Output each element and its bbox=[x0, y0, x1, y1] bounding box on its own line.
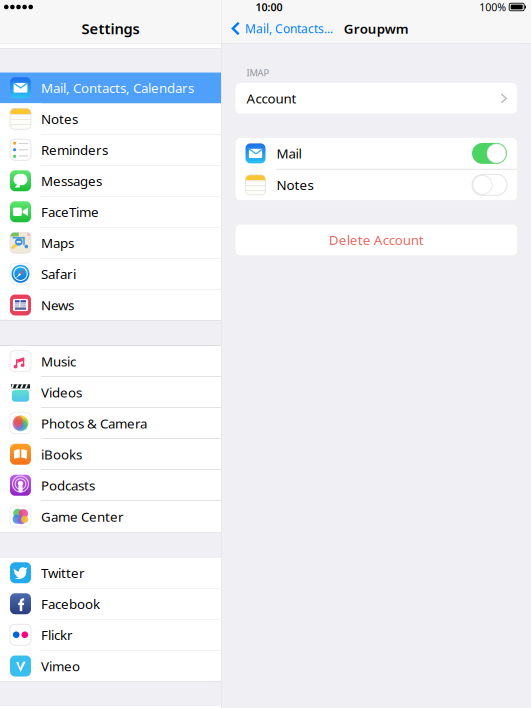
button[interactable]: Twitter bbox=[0, 557, 221, 588]
staticText: News bbox=[41, 296, 74, 314]
button[interactable]: Flickr bbox=[0, 619, 221, 650]
button[interactable]: iBooks bbox=[0, 439, 221, 470]
staticText: Facebook bbox=[41, 595, 100, 613]
button[interactable]: Mail, Contacts... bbox=[221, 14, 333, 43]
staticText: Game Center bbox=[41, 508, 124, 525]
button[interactable]: Vimeo bbox=[0, 650, 221, 681]
button[interactable]: FaceTime bbox=[0, 196, 221, 227]
button[interactable]: Mail, Contacts, Calendars bbox=[0, 72, 221, 103]
staticText: IMAP bbox=[246, 66, 269, 79]
staticText: FaceTime bbox=[41, 203, 99, 221]
button[interactable]: Photos & Camera bbox=[0, 408, 221, 439]
staticText: 100% bbox=[479, 0, 506, 14]
staticText: Settings bbox=[81, 19, 139, 38]
button[interactable]: Notes bbox=[235, 169, 517, 200]
staticText: Flickr bbox=[41, 626, 73, 644]
button[interactable]: Podcasts bbox=[0, 470, 221, 501]
staticText: Delete Account bbox=[329, 231, 424, 249]
staticText: Mail, Contacts... bbox=[245, 20, 333, 36]
button[interactable]: Music bbox=[0, 346, 221, 377]
staticText: Vimeo bbox=[41, 657, 80, 675]
button[interactable]: Mail bbox=[235, 138, 517, 169]
button[interactable]: Safari bbox=[0, 258, 221, 289]
button[interactable]: Maps bbox=[0, 227, 221, 258]
button[interactable]: News bbox=[0, 289, 221, 320]
button[interactable]: Game Center bbox=[0, 501, 221, 532]
staticText: Twitter bbox=[41, 564, 85, 582]
staticText: iBooks bbox=[41, 445, 82, 463]
staticText: Music bbox=[41, 352, 76, 370]
button[interactable]: Facebook bbox=[0, 588, 221, 619]
staticText: Reminders bbox=[41, 141, 108, 159]
button[interactable]: Reminders bbox=[0, 134, 221, 165]
button[interactable]: Videos bbox=[0, 377, 221, 408]
staticText: Podcasts bbox=[41, 476, 95, 494]
staticText: Safari bbox=[41, 265, 76, 283]
staticText: Mail, Contacts, Calendars bbox=[41, 79, 194, 97]
staticText: Messages bbox=[41, 172, 102, 190]
staticText: Notes bbox=[276, 176, 313, 194]
staticText: Maps bbox=[41, 234, 74, 252]
staticText: Videos bbox=[41, 383, 82, 401]
staticText: Account bbox=[246, 89, 296, 107]
button[interactable]: Account bbox=[235, 83, 517, 114]
button[interactable]: Notes bbox=[0, 103, 221, 134]
button[interactable]: Messages bbox=[0, 165, 221, 196]
button[interactable]: Delete Account bbox=[235, 224, 517, 255]
staticText: Notes bbox=[41, 110, 78, 128]
staticText: 10:00 bbox=[255, 0, 282, 14]
staticText: Mail bbox=[276, 144, 301, 162]
staticText: Photos & Camera bbox=[41, 414, 147, 432]
staticText: Groupwm bbox=[344, 20, 409, 37]
